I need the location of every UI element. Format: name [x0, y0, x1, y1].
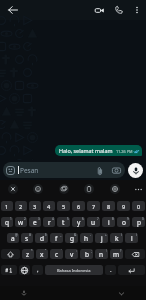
- staticText: ': [61, 249, 62, 253]
- button[interactable]: h: [80, 233, 93, 243]
- staticText: 0: [142, 217, 144, 221]
- button[interactable]: Shift: [1, 249, 20, 259]
- staticText: 4: [52, 217, 54, 221]
- staticText: 2: [19, 203, 23, 210]
- staticText: 6: [82, 217, 84, 221]
- staticText: j: [101, 234, 103, 243]
- button[interactable]: 5: [57, 201, 70, 211]
- button[interactable]: .: [105, 265, 116, 275]
- button[interactable]: z: [22, 249, 34, 259]
- staticText: (: [121, 233, 122, 237]
- button[interactable]: 0: [132, 201, 145, 211]
- button[interactable]: v: [65, 249, 78, 259]
- button[interactable]: 1: [1, 201, 13, 211]
- staticText: w: [18, 218, 24, 227]
- button[interactable]: More tools: [132, 180, 144, 198]
- button[interactable]: Emoji: [32, 180, 43, 198]
- button[interactable]: Backspace: [125, 249, 145, 259]
- staticText: ,: [37, 266, 39, 274]
- button[interactable]: o: [117, 217, 130, 227]
- button[interactable]: Voice message: [128, 163, 143, 178]
- button[interactable]: Video call: [90, 0, 109, 20]
- button[interactable]: Bahasa Indonesia: [45, 265, 103, 275]
- button[interactable]: f: [50, 233, 63, 243]
- staticText: m: [113, 250, 120, 259]
- button[interactable]: Camera: [111, 165, 122, 176]
- staticText: ;: [91, 249, 92, 253]
- staticText: 1: [10, 217, 12, 221]
- button[interactable]: Attach: [94, 165, 105, 176]
- button[interactable]: 7: [87, 201, 100, 211]
- staticText: ): [136, 233, 137, 237]
- staticText: l: [131, 234, 133, 243]
- staticText: !: [106, 249, 107, 253]
- button[interactable]: u: [87, 217, 100, 227]
- staticText: 3: [38, 217, 40, 221]
- button[interactable]: Themes: [109, 180, 120, 198]
- staticText: g: [70, 234, 74, 243]
- staticText: 3: [33, 203, 37, 210]
- button[interactable]: Clipboard: [83, 180, 94, 198]
- staticText: Halo, selamat malam: [59, 147, 113, 154]
- staticText: p: [137, 218, 141, 227]
- button[interactable]: 3: [29, 201, 41, 211]
- staticText: +: [105, 233, 107, 237]
- button[interactable]: c: [50, 249, 63, 259]
- staticText: _: [60, 233, 62, 237]
- button[interactable]: 8: [102, 201, 115, 211]
- button[interactable]: r: [43, 217, 55, 227]
- button[interactable]: Call: [109, 0, 128, 20]
- button[interactable]: 4: [43, 201, 55, 211]
- staticText: 6: [77, 203, 81, 210]
- button[interactable]: q: [1, 217, 13, 227]
- button[interactable]: Gboard settings: [7, 180, 18, 198]
- staticText: .: [110, 266, 112, 274]
- button[interactable]: 6: [72, 201, 85, 211]
- staticText: 9: [122, 203, 126, 210]
- button[interactable]: j: [95, 233, 108, 243]
- button[interactable]: m: [110, 249, 123, 259]
- button[interactable]: n: [95, 249, 108, 259]
- staticText: o: [122, 218, 126, 227]
- staticText: h: [84, 234, 89, 243]
- button[interactable]: Translate: [58, 180, 69, 198]
- button[interactable]: Pesan: [3, 162, 125, 178]
- button[interactable]: t: [57, 217, 70, 227]
- button[interactable]: d: [35, 233, 48, 243]
- button[interactable]: l: [125, 233, 138, 243]
- staticText: @: [15, 233, 18, 237]
- button[interactable]: a: [7, 233, 19, 243]
- staticText: *: [31, 249, 33, 253]
- button[interactable]: 2: [15, 201, 27, 211]
- button[interactable]: Change language: [19, 265, 30, 275]
- staticText: 0: [137, 203, 141, 210]
- button[interactable]: ,: [32, 265, 43, 275]
- button[interactable]: More options: [128, 0, 146, 20]
- staticText: q: [5, 218, 9, 227]
- button[interactable]: Hide keyboard: [97, 286, 146, 300]
- button[interactable]: Halo, selamat malam: [55, 145, 142, 156]
- button[interactable]: Enter: [118, 265, 145, 275]
- staticText: 8: [112, 217, 114, 221]
- button[interactable]: s: [21, 233, 33, 243]
- button[interactable]: e: [29, 217, 41, 227]
- button[interactable]: k: [110, 233, 123, 243]
- button[interactable]: p: [132, 217, 145, 227]
- button[interactable]: b: [80, 249, 93, 259]
- button[interactable]: w: [15, 217, 27, 227]
- button[interactable]: i: [102, 217, 115, 227]
- staticText: c: [55, 250, 59, 259]
- button[interactable]: x: [36, 249, 48, 259]
- staticText: f: [55, 234, 58, 243]
- button[interactable]: Back: [0, 0, 25, 20]
- button[interactable]: g: [65, 233, 78, 243]
- button[interactable]: 9: [117, 201, 130, 211]
- button[interactable]: Voice input: [0, 286, 48, 300]
- button[interactable]: Symbols: [1, 265, 17, 275]
- staticText: e: [33, 218, 37, 227]
- staticText: y: [77, 218, 81, 227]
- button[interactable]: y: [72, 217, 85, 227]
- staticText: 5: [62, 203, 66, 210]
- staticText: Bahasa Indonesia: [57, 268, 91, 273]
